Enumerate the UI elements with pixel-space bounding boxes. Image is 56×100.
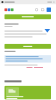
button[interactable] bbox=[4, 14, 51, 19]
button[interactable]: Search bbox=[35, 7, 38, 12]
button[interactable] bbox=[4, 44, 51, 49]
button[interactable]: Open app bbox=[47, 7, 51, 12]
button[interactable]: Cart bbox=[41, 7, 44, 12]
button[interactable] bbox=[4, 86, 51, 100]
